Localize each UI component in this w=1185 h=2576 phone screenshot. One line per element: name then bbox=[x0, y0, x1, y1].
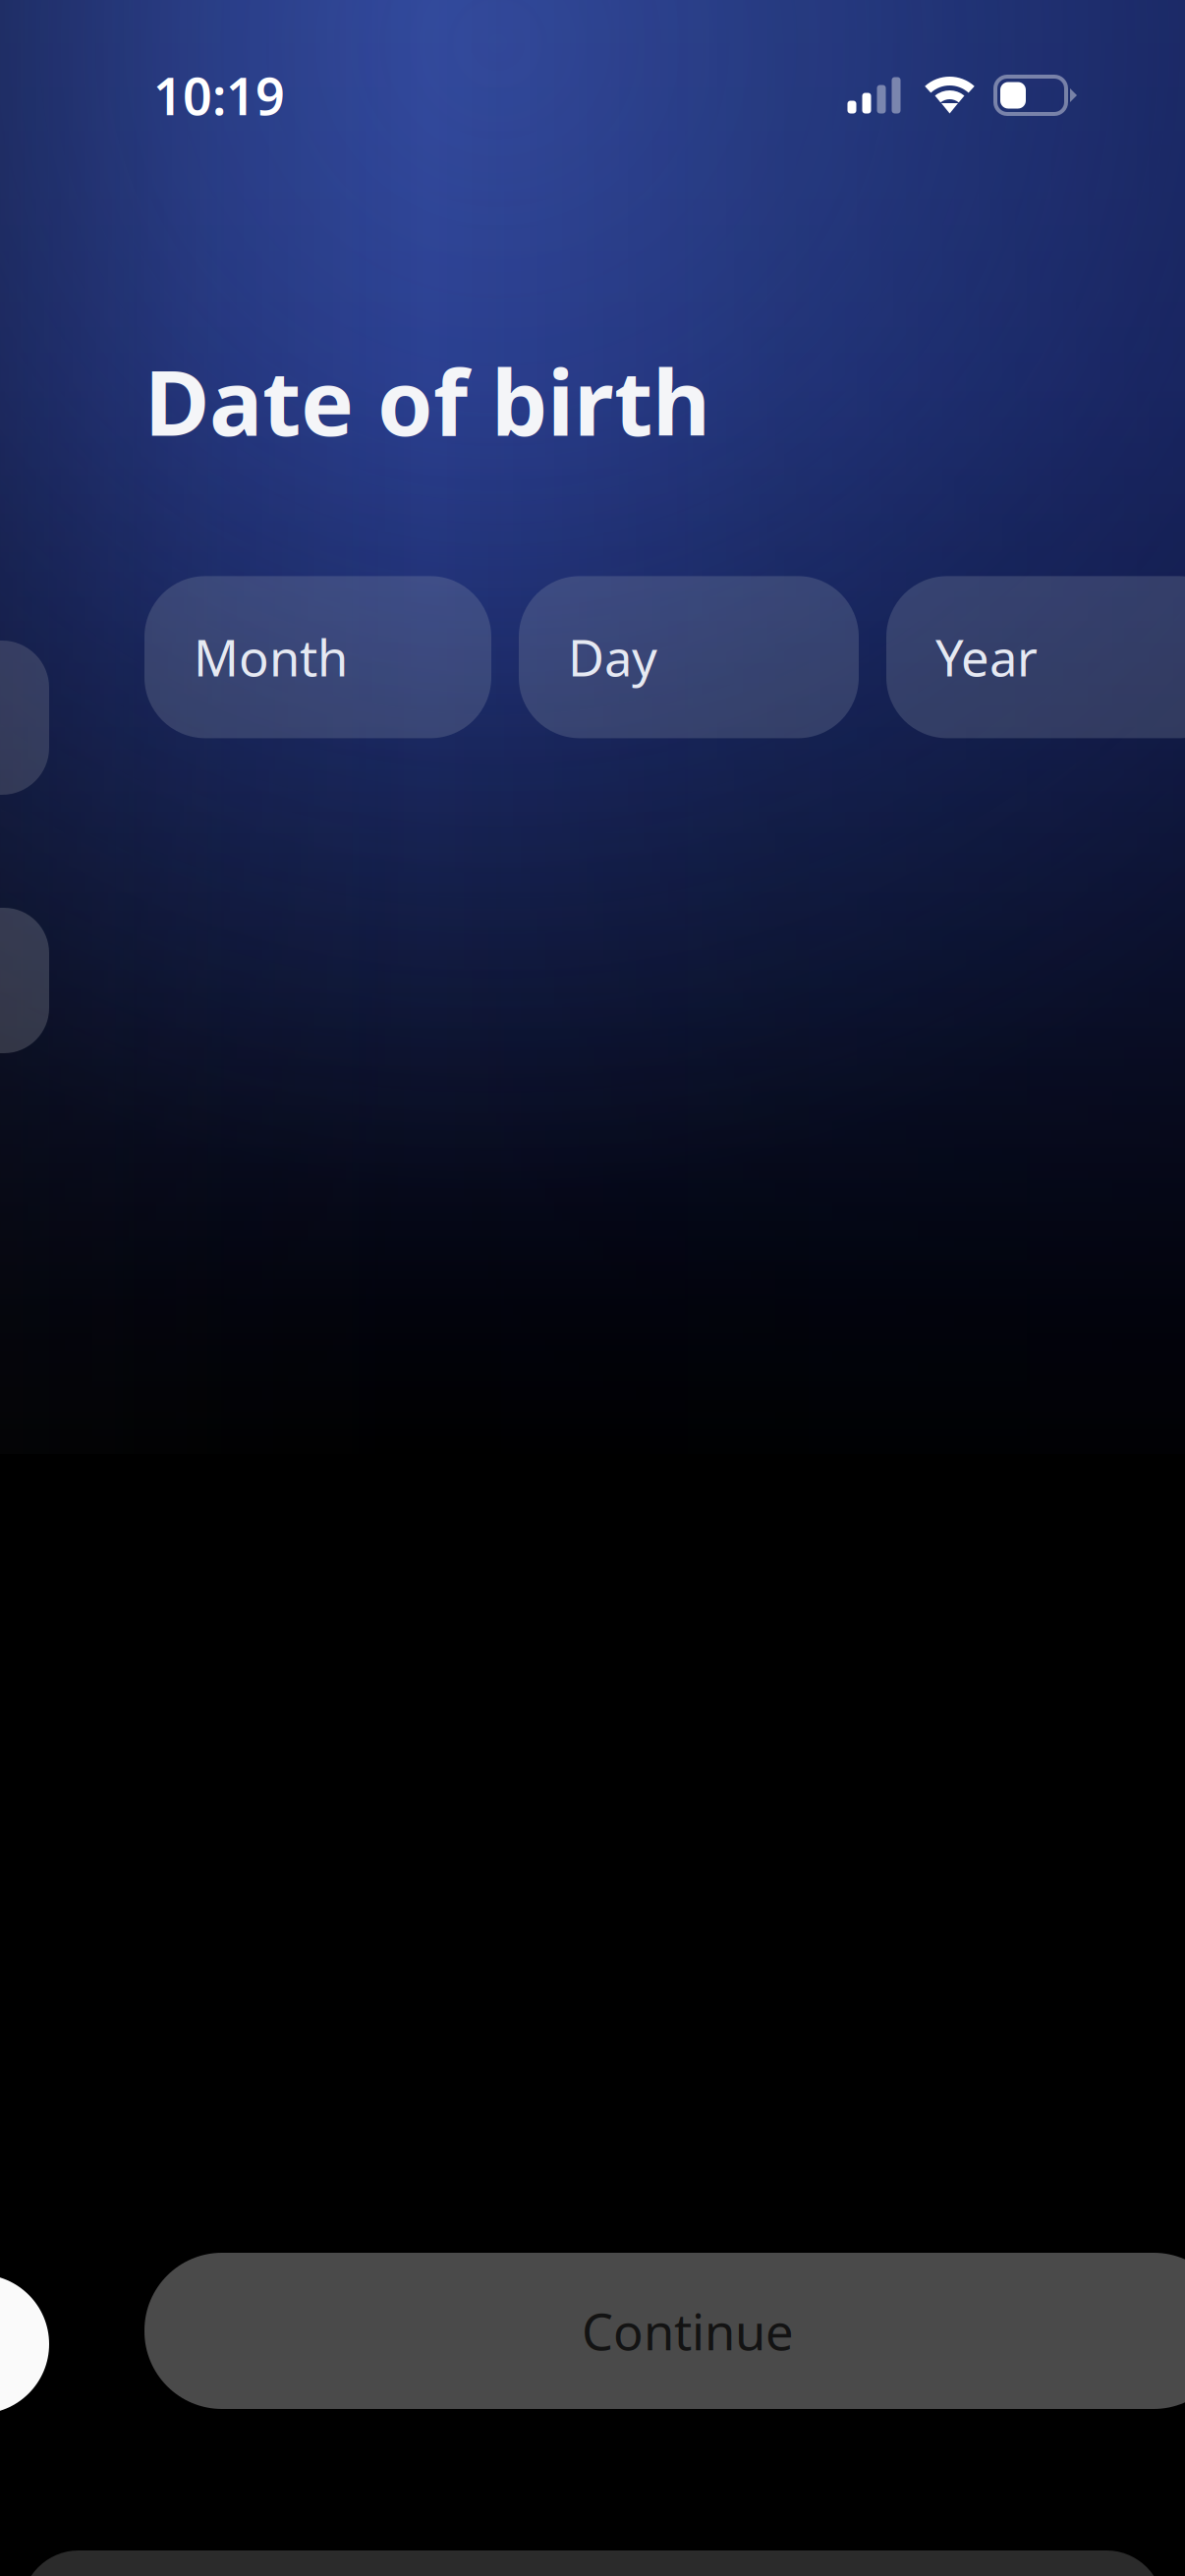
staticText: Year bbox=[935, 624, 1038, 690]
button[interactable]: Day bbox=[519, 576, 859, 738]
staticText: Continue bbox=[582, 2298, 794, 2364]
staticText: Date of birth bbox=[144, 342, 710, 460]
staticText: 10:19 bbox=[153, 61, 285, 129]
button[interactable]: Month bbox=[144, 576, 491, 738]
staticText: Month bbox=[194, 624, 348, 690]
staticText: Day bbox=[568, 624, 657, 690]
button[interactable]: Year bbox=[886, 576, 1185, 738]
button[interactable]: Continue bbox=[144, 2253, 1185, 2409]
